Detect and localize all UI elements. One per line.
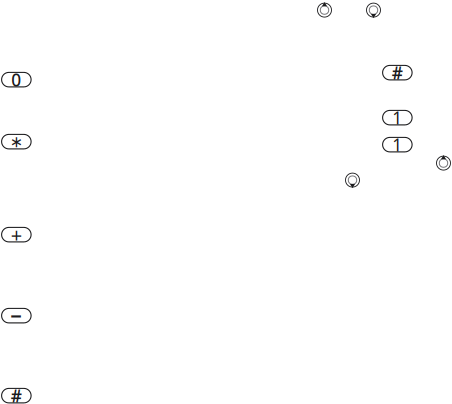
button[interactable]: One xyxy=(383,137,412,152)
button[interactable]: One xyxy=(383,110,412,125)
staticText: 1 xyxy=(392,133,402,156)
button[interactable]: Hash xyxy=(2,388,31,403)
staticText: # xyxy=(11,384,22,404)
button[interactable]: Move up xyxy=(317,3,332,18)
button[interactable]: Decrease xyxy=(345,173,360,188)
staticText: # xyxy=(392,61,403,84)
button[interactable]: Plus xyxy=(2,227,31,242)
button[interactable]: Zero xyxy=(2,72,31,87)
button[interactable]: Hash xyxy=(383,65,412,80)
button[interactable]: Move down xyxy=(366,3,381,18)
staticText: ∗ xyxy=(10,133,23,151)
staticText: 1 xyxy=(392,106,402,129)
button[interactable]: Star xyxy=(2,134,31,149)
staticText: − xyxy=(10,302,22,329)
staticText: + xyxy=(11,221,22,248)
staticText: 0 xyxy=(11,68,21,91)
button[interactable]: Minus xyxy=(2,308,31,323)
button[interactable]: Increase xyxy=(436,156,451,171)
